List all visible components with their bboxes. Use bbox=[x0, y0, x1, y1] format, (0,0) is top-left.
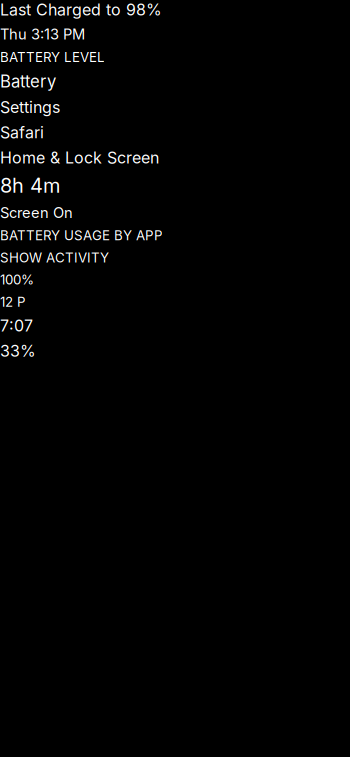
staticText: BATTERY USAGE BY APP bbox=[0, 227, 163, 243]
staticText: 100% bbox=[0, 272, 34, 288]
staticText: Home & Lock Screen bbox=[0, 148, 159, 167]
staticText: 7:07 bbox=[0, 316, 33, 335]
staticText: 8h 4m bbox=[0, 173, 60, 198]
staticText: Screen On bbox=[0, 204, 73, 221]
staticText: 33% bbox=[0, 341, 36, 361]
staticText: Settings bbox=[0, 97, 60, 117]
staticText: SHOW ACTIVITY bbox=[0, 250, 109, 266]
staticText: Thu 3:13 PM bbox=[0, 25, 85, 43]
staticText: BATTERY LEVEL bbox=[0, 49, 105, 65]
staticText: Battery bbox=[0, 71, 56, 91]
staticText: 12 P bbox=[0, 294, 26, 310]
staticText: Safari bbox=[0, 123, 44, 142]
staticText: Last Charged to 98% bbox=[0, 0, 162, 19]
